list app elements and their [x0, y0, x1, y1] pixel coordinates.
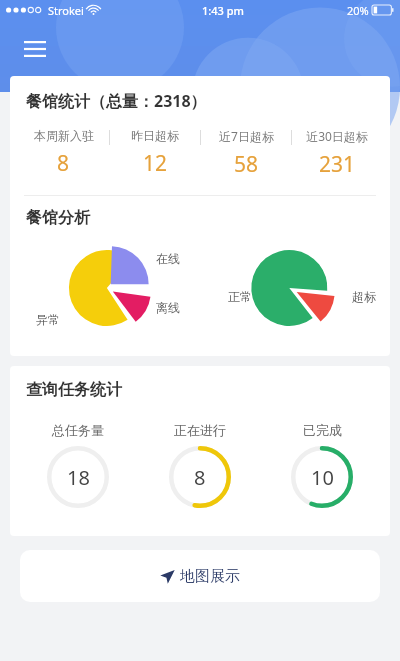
staticText: 正常 [228, 289, 252, 304]
staticText: 20% [347, 3, 369, 18]
staticText: 8 [57, 149, 70, 178]
staticText: 1:43 pm [202, 3, 244, 18]
staticText: 10 [311, 464, 334, 491]
button[interactable]: 近7日超标 [201, 128, 291, 179]
staticText: 昨日超标 [131, 128, 179, 143]
staticText: Strokei [48, 3, 84, 18]
staticText: 查询任务统计 [26, 380, 122, 400]
staticText: 近7日超标 [219, 128, 274, 144]
button[interactable]: 已完成 [276, 412, 368, 520]
staticText: 地图展示 [180, 567, 240, 586]
staticText: 已完成 [303, 422, 342, 438]
staticText: 餐馆分析 [26, 208, 90, 228]
staticText: 在线 [156, 251, 180, 266]
button[interactable]: 正在进行 [154, 412, 246, 520]
staticText: 8 [194, 464, 206, 491]
staticText: 正在进行 [174, 422, 226, 438]
staticText: 总任务量 [52, 422, 104, 438]
button[interactable]: 昨日超标 [110, 128, 200, 178]
button[interactable]: Menu [18, 32, 52, 66]
button[interactable]: 地图展示 [20, 550, 380, 602]
staticText: 近30日超标 [306, 128, 368, 144]
staticText: 异常 [36, 312, 60, 327]
staticText: 18 [67, 464, 90, 491]
staticText: 离线 [156, 300, 180, 315]
staticText: 本周新入驻 [34, 128, 94, 143]
button[interactable]: 本周新入驻 [18, 128, 109, 178]
button[interactable]: 总任务量 [32, 412, 124, 520]
staticText: 超标 [352, 289, 376, 304]
staticText: 12 [143, 149, 168, 178]
staticText: 58 [234, 150, 259, 179]
staticText: 餐馆统计（总量：2318） [26, 90, 207, 112]
button[interactable]: 近30日超标 [292, 128, 382, 179]
staticText: 231 [319, 150, 356, 179]
